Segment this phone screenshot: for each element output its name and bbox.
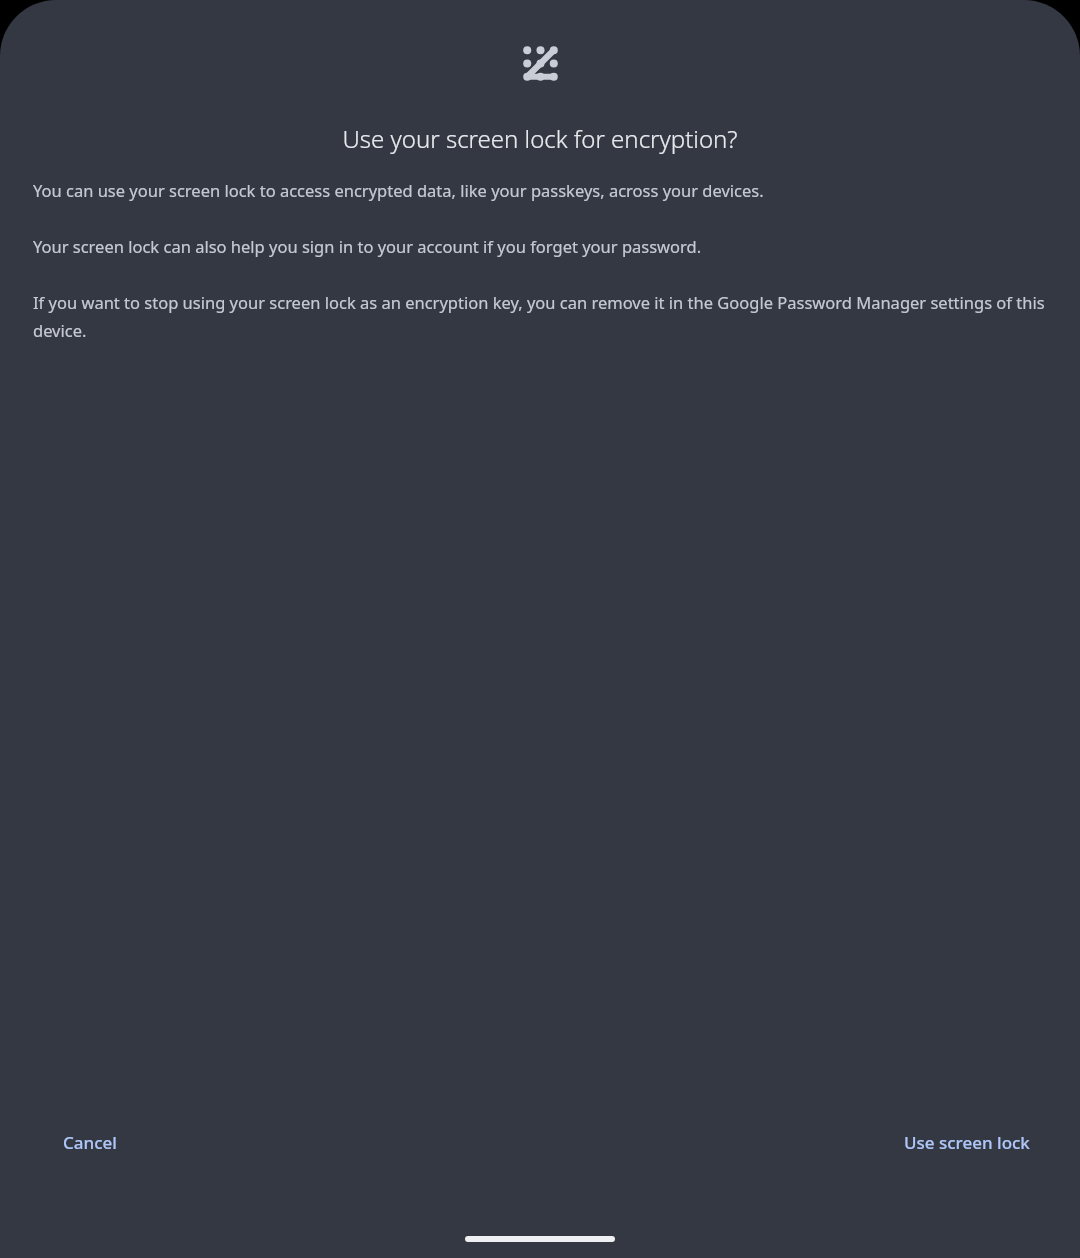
staticText: Use your screen lock for encryption? [30,122,1050,155]
button[interactable]: Cancel [32,1121,148,1164]
staticText: Use screen lock [904,1131,1030,1154]
other: Screen lock pattern [523,46,558,81]
staticText: You can use your screen lock to access e… [33,179,1050,341]
staticText: Cancel [63,1131,117,1154]
button[interactable]: Use screen lock [886,1121,1048,1164]
